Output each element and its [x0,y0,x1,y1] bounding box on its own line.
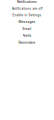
staticText: Messages [18,20,35,24]
staticText: Reminders [18,41,35,44]
staticText: Email [22,27,31,31]
staticText: Notifications are off [11,7,42,10]
staticText: Enable in Settings [12,13,41,17]
staticText: Alerts [22,34,31,38]
staticText: Notifications [17,0,37,4]
